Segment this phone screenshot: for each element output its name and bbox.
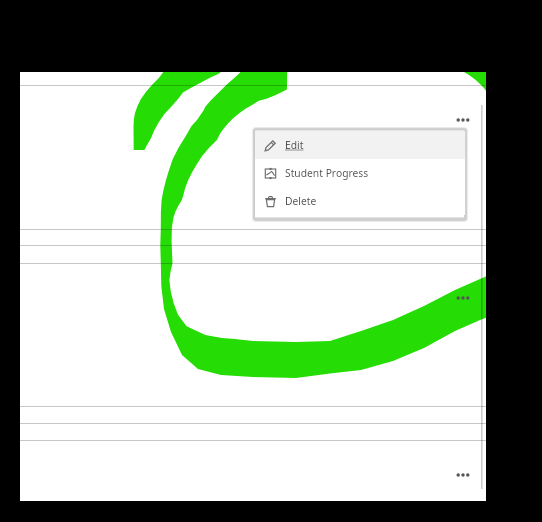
button[interactable]: More options xyxy=(450,109,480,131)
staticText: Delete xyxy=(285,194,317,208)
staticText: Edit xyxy=(285,138,304,152)
button[interactable]: Edit xyxy=(255,131,465,159)
button[interactable]: More options xyxy=(450,464,480,486)
staticText: Student Progress xyxy=(285,166,369,180)
button[interactable]: More options xyxy=(450,287,480,309)
button[interactable]: Delete xyxy=(255,187,465,215)
button[interactable]: Student Progress xyxy=(255,159,465,187)
